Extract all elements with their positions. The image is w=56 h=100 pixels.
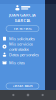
button[interactable]: CERRAR SESION	[6, 83, 39, 89]
staticText: CERRAR SESION	[12, 84, 32, 88]
staticText: VER MI PERFIL	[13, 27, 31, 30]
button[interactable]: Datos personales	[0, 51, 45, 59]
button[interactable]: VER MI PERFIL	[6, 26, 39, 32]
staticText: GARCIA	[14, 18, 30, 23]
staticText: Mis servicios contratados	[9, 41, 33, 52]
staticText: Datos personales	[9, 52, 39, 57]
staticText: JUAN GARCIA	[9, 12, 36, 18]
button[interactable]: Mis solicitudes	[0, 35, 45, 43]
staticText: Mis solicitudes	[9, 36, 35, 41]
staticText: Mis citas	[9, 60, 25, 65]
button[interactable]: Mis servicios contratados	[0, 43, 45, 51]
button[interactable]: Mis citas	[0, 59, 45, 67]
